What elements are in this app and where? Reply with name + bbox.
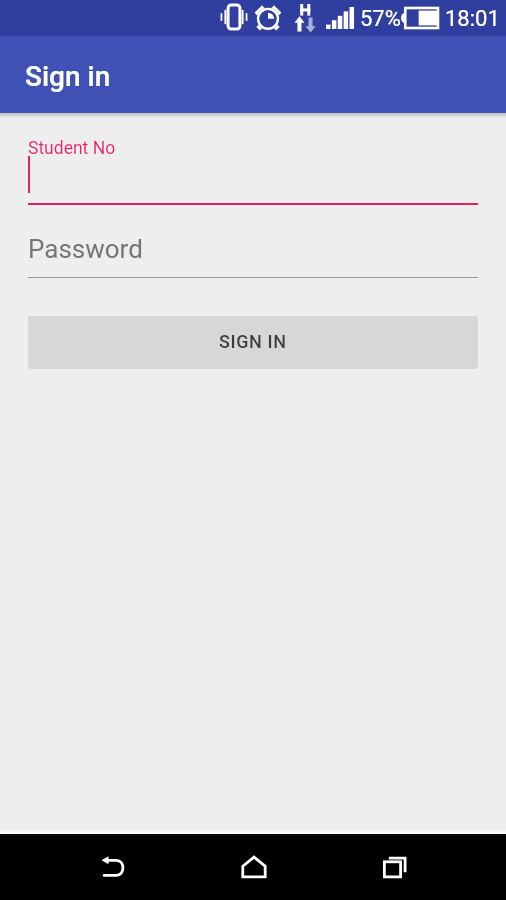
button[interactable]: Recent apps bbox=[324, 834, 465, 900]
button[interactable]: Password bbox=[28, 226, 478, 278]
staticText: 18:01 bbox=[445, 6, 500, 32]
staticText: Password bbox=[28, 234, 143, 264]
button[interactable]: SIGN IN bbox=[28, 316, 478, 367]
button[interactable]: Home bbox=[183, 834, 324, 900]
button[interactable]: Student No bbox=[28, 124, 478, 219]
button[interactable]: Back bbox=[42, 834, 183, 900]
staticText: Student No bbox=[28, 138, 116, 159]
staticText: Sign in bbox=[25, 60, 111, 93]
staticText: 57% bbox=[360, 6, 401, 32]
staticText: SIGN IN bbox=[219, 331, 287, 352]
